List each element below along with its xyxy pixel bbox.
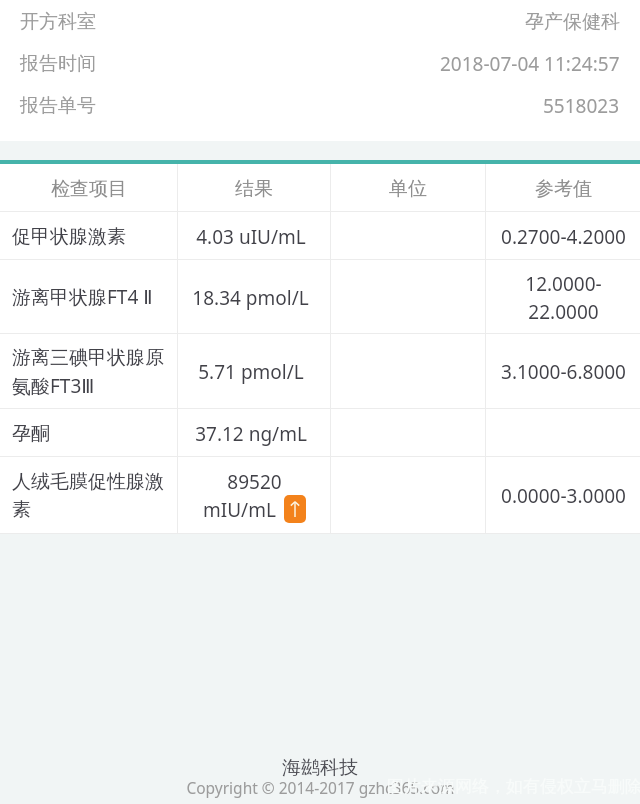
staticText: 促甲状腺激素 — [12, 222, 126, 250]
button[interactable]: 促甲状腺激素 — [0, 212, 640, 259]
staticText: 0.2700-4.2000 — [501, 222, 626, 250]
staticText: 单位 — [389, 174, 427, 202]
staticText: 游离三碘甲状腺原 氨酸FT3Ⅲ — [12, 343, 164, 400]
staticText: 18.34 pmol/L — [192, 283, 309, 311]
button[interactable]: 人绒毛膜促性腺激 素 — [0, 457, 640, 533]
button[interactable]: 游离三碘甲状腺原 氨酸FT3Ⅲ — [0, 334, 640, 408]
staticText: 4.03 uIU/mL — [196, 222, 306, 250]
staticText: 37.12 ng/mL — [195, 419, 307, 447]
staticText: 12.0000- 22.0000 — [525, 269, 602, 325]
staticText: 3.1000-6.8000 — [501, 357, 626, 385]
staticText: 5518023 — [543, 91, 620, 119]
staticText: 0.0000-3.0000 — [501, 481, 626, 509]
staticText: 报告时间 — [20, 49, 96, 77]
button[interactable]: 开方科室 — [0, 0, 640, 42]
button[interactable]: 检查项目 — [0, 164, 640, 211]
button[interactable]: 报告时间 — [0, 42, 640, 84]
staticText: 结果 — [235, 174, 273, 202]
button[interactable]: 报告单号 — [0, 84, 640, 126]
staticText: 2018-07-04 11:24:57 — [440, 49, 620, 77]
staticText: mIU/mL — [203, 495, 276, 523]
staticText: 孕酮 — [12, 419, 50, 447]
button[interactable]: 游离甲状腺FT4 Ⅱ — [0, 260, 640, 333]
staticText: 报告单号 — [20, 91, 96, 119]
staticText: 检查项目 — [51, 174, 127, 202]
staticText: 开方科室 — [20, 7, 96, 35]
staticText: 人绒毛膜促性腺激 素 — [12, 467, 164, 523]
staticText: 游离甲状腺FT4 Ⅱ — [12, 282, 153, 311]
staticText: 89520 — [227, 467, 282, 495]
staticText: 海鹚科技 — [282, 756, 358, 780]
staticText: 孕产保健科 — [525, 7, 620, 35]
button[interactable]: 孕酮 — [0, 409, 640, 456]
staticText: Copyright © 2014-2017 gzhc365.com — [186, 780, 455, 798]
staticText: 参考值 — [535, 174, 592, 202]
staticText: 图片来源网络，如有侵权立马删除 — [387, 773, 640, 798]
other: Value above reference range — [284, 495, 306, 523]
staticText: 5.71 pmol/L — [198, 357, 304, 385]
